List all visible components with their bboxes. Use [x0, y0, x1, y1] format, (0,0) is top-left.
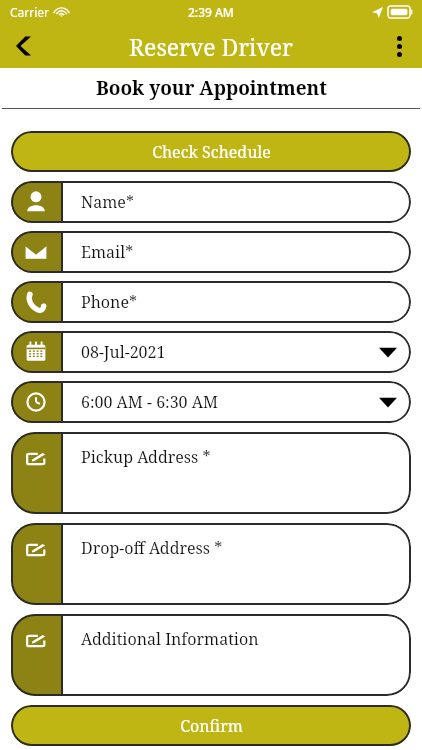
- staticText: Drop-off Address *: [81, 537, 223, 559]
- other: Date: [11, 331, 61, 373]
- button[interactable]: Phone: [11, 281, 411, 323]
- staticText: Additional Information: [81, 628, 259, 650]
- button[interactable]: Back: [0, 24, 46, 68]
- button[interactable]: Name: [11, 181, 411, 223]
- staticText: Book your Appointment: [96, 75, 327, 101]
- button[interactable]: More options: [376, 24, 422, 68]
- other: Additional information: [11, 614, 61, 696]
- staticText: Reserve Driver: [129, 31, 293, 62]
- staticText: 2:39 AM: [188, 4, 234, 20]
- other: Drop-off address: [11, 523, 61, 605]
- other: Name: [11, 181, 61, 223]
- other: Phone: [11, 281, 61, 323]
- staticText: Name*: [81, 191, 134, 213]
- staticText: Carrier: [10, 4, 50, 20]
- button[interactable]: Check Schedule: [11, 131, 411, 172]
- staticText: 08-Jul-2021: [81, 341, 166, 363]
- staticText: Phone*: [81, 291, 137, 313]
- button[interactable]: Date: [11, 331, 411, 373]
- other: Pickup address: [11, 432, 61, 514]
- staticText: Pickup Address *: [81, 446, 211, 468]
- button[interactable]: Pickup address: [11, 432, 411, 514]
- other: Email: [11, 231, 61, 273]
- button[interactable]: Time: [11, 381, 411, 423]
- button[interactable]: Additional information: [11, 614, 411, 696]
- staticText: Email*: [81, 241, 134, 263]
- button[interactable]: Confirm: [11, 705, 411, 746]
- staticText: 6:00 AM - 6:30 AM: [81, 391, 218, 413]
- button[interactable]: Email: [11, 231, 411, 273]
- button[interactable]: Drop-off address: [11, 523, 411, 605]
- other: Time: [11, 381, 61, 423]
- staticText: Confirm: [180, 715, 243, 737]
- staticText: Check Schedule: [152, 141, 271, 163]
